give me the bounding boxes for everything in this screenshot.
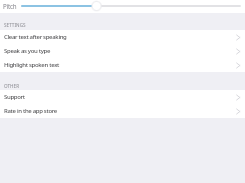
button[interactable]: Clear text after speaking bbox=[0, 30, 245, 44]
button[interactable]: Rate in the app store bbox=[0, 104, 245, 118]
button[interactable]: Pitch slider bbox=[0, 0, 245, 13]
staticText: OTHER bbox=[4, 83, 20, 89]
button[interactable]: Support bbox=[0, 90, 245, 104]
staticText: Speak as you type bbox=[4, 47, 51, 55]
button[interactable]: Highlight spoken text bbox=[0, 58, 245, 72]
staticText: Highlight spoken text bbox=[4, 61, 60, 69]
button[interactable]: Speak as you type bbox=[0, 44, 245, 58]
staticText: Support bbox=[4, 93, 25, 101]
staticText: SETTINGS bbox=[4, 22, 26, 28]
staticText: Rate in the app store bbox=[4, 107, 57, 115]
staticText: Clear text after speaking bbox=[4, 33, 67, 41]
staticText: Pitch bbox=[3, 2, 17, 10]
